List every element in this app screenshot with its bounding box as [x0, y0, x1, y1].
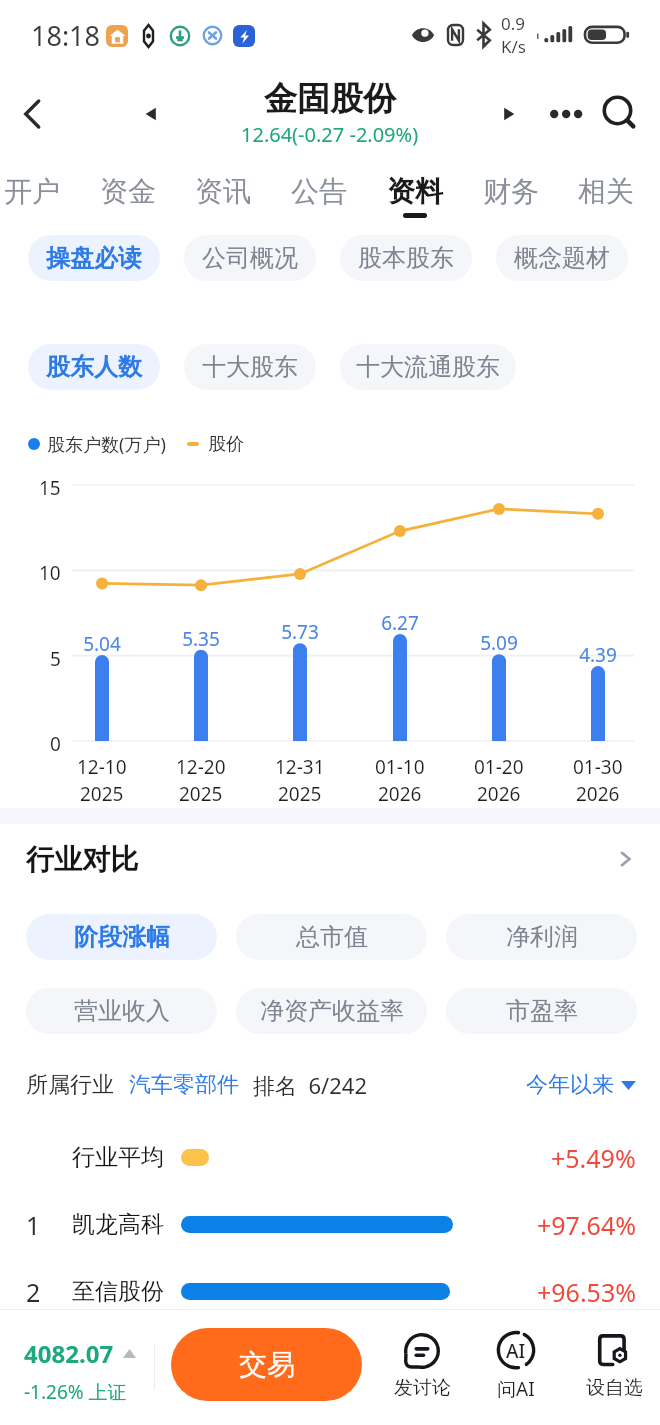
staticText: 财务	[483, 174, 539, 209]
staticText: 凯龙高科	[72, 1210, 164, 1239]
staticText: 5.35	[182, 626, 220, 648]
staticText: 净资产收益率	[260, 996, 404, 1026]
staticText: 十大流通股东	[356, 352, 500, 382]
staticText: 金固股份	[264, 78, 396, 120]
staticText: 12-31	[275, 754, 325, 780]
staticText: 2025	[179, 781, 223, 807]
staticText: 10	[39, 560, 61, 586]
staticText: 4082.07	[24, 1337, 114, 1370]
staticText: 行业平均	[72, 1143, 164, 1172]
button[interactable]: 资金	[81, 168, 175, 230]
staticText: 相关	[578, 174, 634, 209]
button[interactable]: 股东人数	[28, 344, 160, 390]
button[interactable]: 发讨论	[375, 1329, 469, 1400]
staticText: -1.26% 上证	[24, 1379, 127, 1405]
staticText: 15	[39, 475, 61, 501]
staticText: 18:18	[31, 17, 101, 54]
button[interactable]: 操盘必读	[28, 235, 160, 281]
button[interactable]: Search	[599, 92, 643, 136]
staticText: 阶段涨幅	[74, 922, 170, 952]
staticText: 总市值	[296, 922, 368, 952]
staticText: K/s	[501, 35, 526, 58]
staticText: 排名 6/242	[253, 1070, 367, 1100]
staticText: +96.53%	[537, 1275, 636, 1309]
staticText: 操盘必读	[46, 243, 142, 273]
button[interactable]: 今年以来	[526, 1071, 636, 1099]
button[interactable]: 概念题材	[496, 235, 628, 281]
staticText: 2	[26, 1275, 41, 1309]
button[interactable]: 交易	[171, 1328, 362, 1401]
staticText: 资金	[100, 174, 156, 209]
button[interactable]: 行业对比	[26, 832, 636, 886]
staticText: 12-20	[176, 754, 226, 780]
staticText: 01-30	[573, 754, 623, 780]
staticText: 2025	[80, 781, 124, 807]
button[interactable]: 十大股东	[184, 344, 316, 390]
button[interactable]: Previous stock	[129, 92, 173, 136]
staticText: +5.49%	[551, 1141, 636, 1175]
staticText: 01-10	[375, 754, 425, 780]
staticText: 开户	[4, 174, 60, 209]
staticText: 净利润	[506, 922, 578, 952]
button[interactable]: AI	[469, 1329, 563, 1402]
button[interactable]: More options	[536, 88, 588, 140]
staticText: 资讯	[195, 174, 251, 209]
staticText: 2026	[576, 781, 620, 807]
staticText: 发讨论	[394, 1376, 451, 1400]
staticText: 今年以来	[526, 1071, 614, 1099]
staticText: 5.04	[83, 631, 121, 653]
button[interactable]: 开户	[0, 168, 79, 230]
staticText: 股本股东	[358, 243, 454, 273]
button[interactable]: 股本股东	[340, 235, 472, 281]
button[interactable]: 财务	[464, 168, 558, 230]
staticText: 股东户数(万户)	[47, 432, 166, 457]
staticText: 概念题材	[514, 243, 610, 273]
button[interactable]: 资料	[368, 168, 462, 230]
button[interactable]: Next stock	[487, 92, 531, 136]
staticText: 至信股份	[72, 1277, 164, 1306]
staticText: 所属行业	[26, 1071, 114, 1099]
button[interactable]: 公告	[272, 168, 366, 230]
staticText: 行业对比	[26, 842, 138, 877]
button[interactable]: 行业平均	[26, 1124, 636, 1191]
button[interactable]: 4082.07	[24, 1337, 136, 1405]
button[interactable]: 阶段涨幅	[26, 914, 217, 960]
button[interactable]: 汽车零部件	[129, 1071, 239, 1099]
button[interactable]: 设自选	[567, 1329, 660, 1400]
staticText: 公告	[291, 174, 347, 209]
button[interactable]: 市盈率	[446, 988, 637, 1034]
staticText: 股价	[208, 433, 244, 456]
button[interactable]: 1	[26, 1191, 636, 1258]
staticText: 设自选	[586, 1376, 643, 1400]
staticText: 十大股东	[202, 352, 298, 382]
staticText: 2026	[378, 781, 422, 807]
button[interactable]: 总市值	[236, 914, 427, 960]
button[interactable]: 营业收入	[26, 988, 217, 1034]
button[interactable]: 2	[26, 1258, 636, 1325]
button[interactable]: 资讯	[176, 168, 270, 230]
staticText: 01-20	[474, 754, 524, 780]
staticText: 12-10	[77, 754, 127, 780]
staticText: 12.64(-0.27 -2.09%)	[241, 121, 419, 148]
staticText: AI	[506, 1338, 526, 1364]
button[interactable]: 公司概况	[184, 235, 316, 281]
staticText: 1	[26, 1208, 41, 1242]
button[interactable]: 净利润	[446, 914, 637, 960]
button[interactable]: 相关	[559, 168, 653, 230]
staticText: 2025	[278, 781, 322, 807]
staticText: 0.9	[501, 12, 526, 35]
staticText: 2026	[477, 781, 521, 807]
staticText: 营业收入	[74, 996, 170, 1026]
staticText: +97.64%	[537, 1208, 636, 1242]
staticText: 5	[50, 646, 61, 672]
staticText: 资料	[387, 174, 443, 209]
button[interactable]: Back	[8, 90, 56, 138]
staticText: 5.09	[480, 630, 518, 652]
button[interactable]: 十大流通股东	[340, 344, 516, 390]
staticText: 0	[50, 731, 61, 757]
staticText: 股东人数	[46, 352, 142, 382]
staticText: 4.39	[579, 642, 617, 664]
button[interactable]: 净资产收益率	[236, 988, 427, 1034]
staticText: 5.73	[281, 619, 319, 641]
staticText: 6.27	[381, 610, 419, 632]
